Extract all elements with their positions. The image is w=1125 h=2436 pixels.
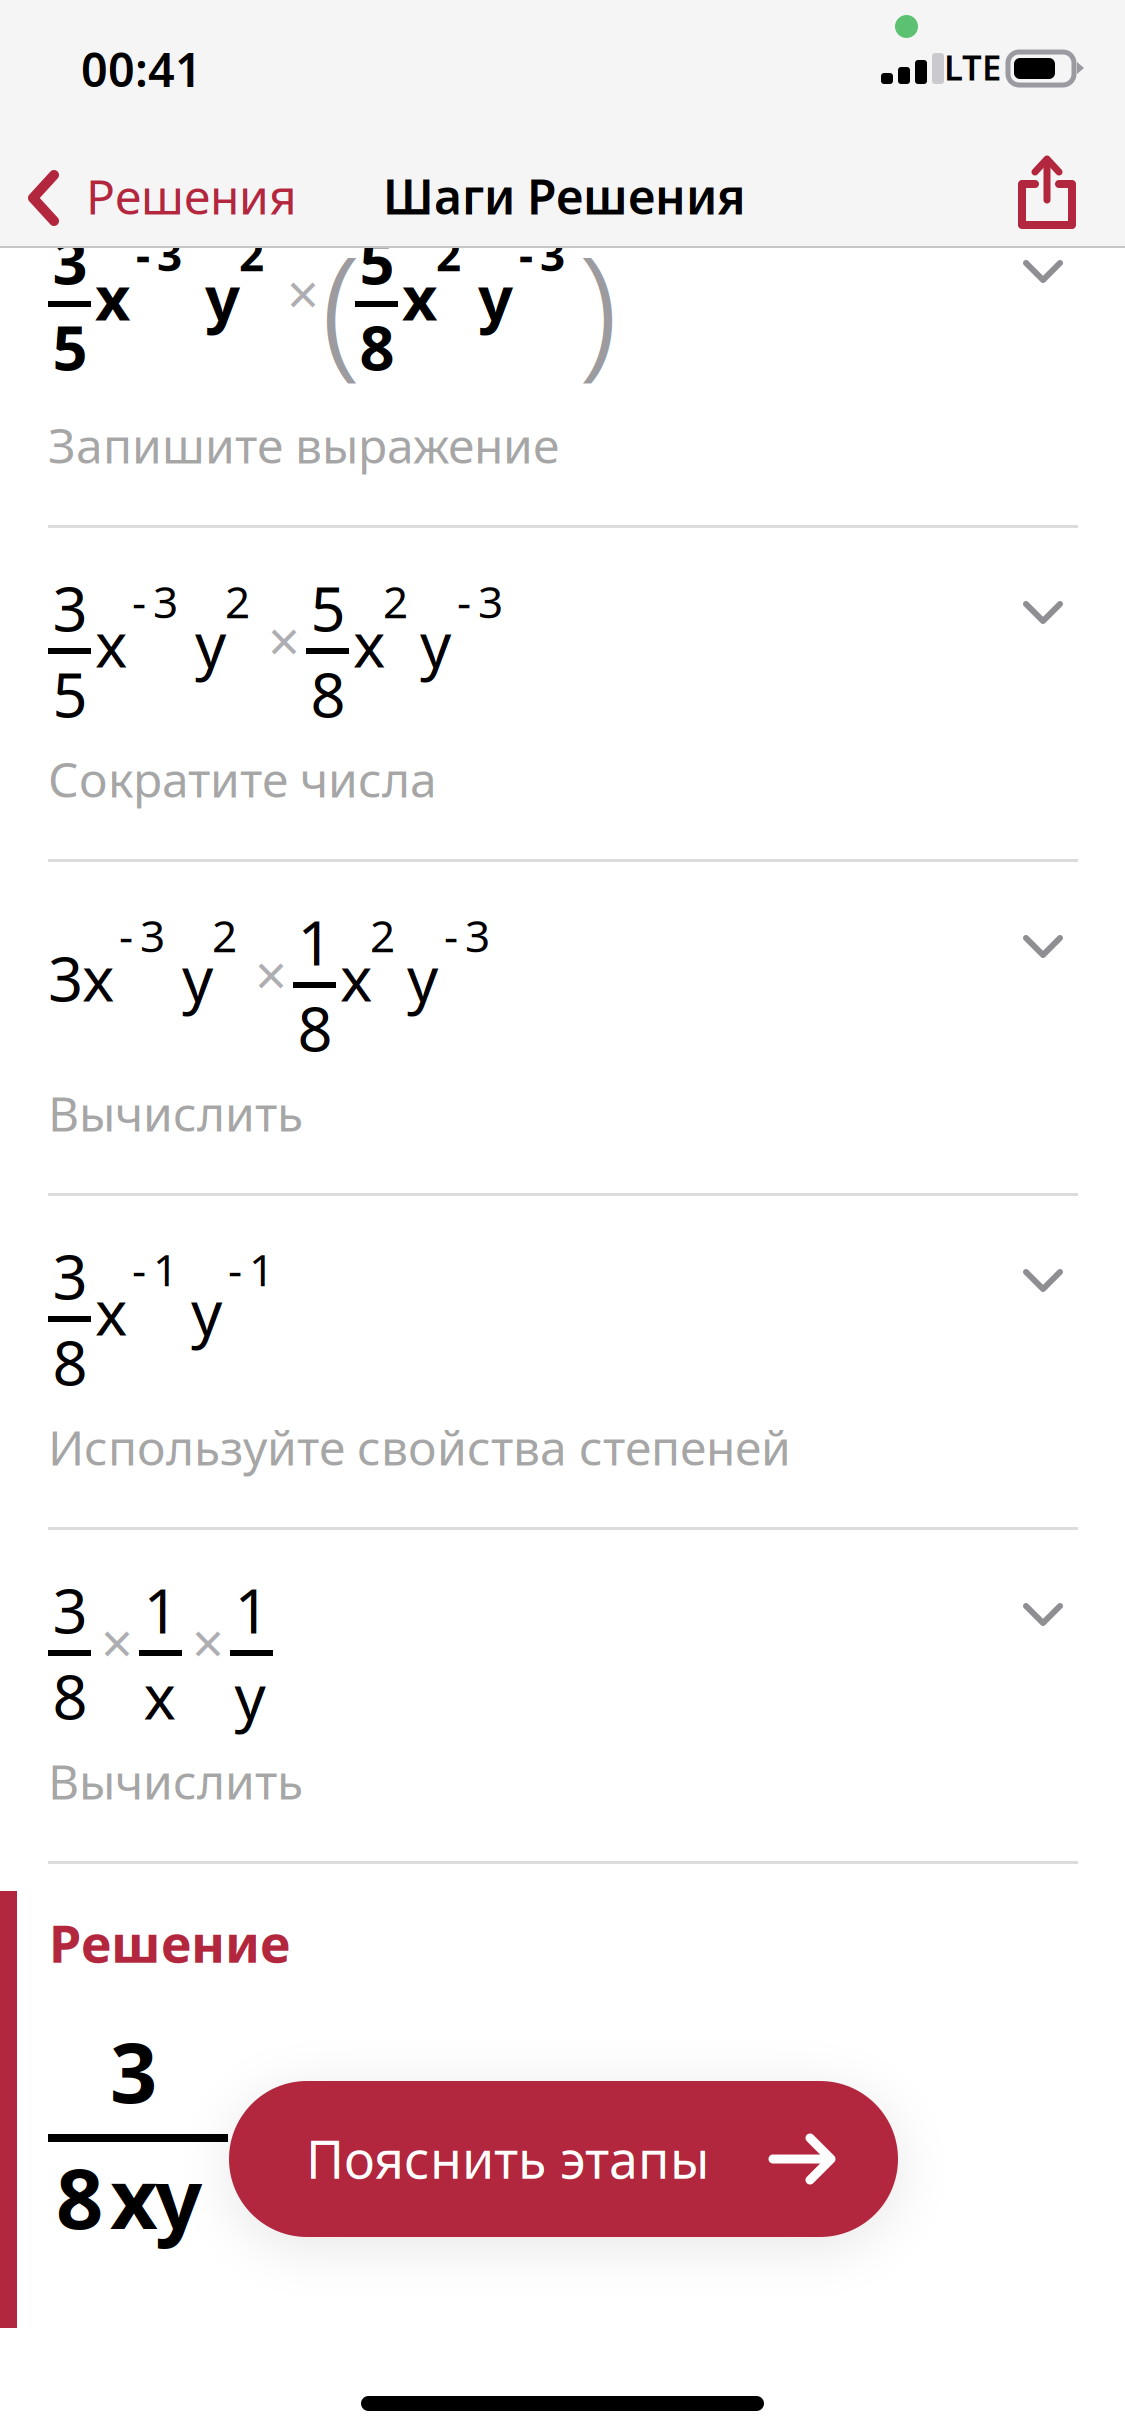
staticText: - 3: [437, 906, 490, 964]
staticText: 8: [297, 987, 332, 1068]
staticText: 2: [436, 225, 461, 283]
staticText: ): [578, 209, 618, 400]
staticText: y: [182, 937, 213, 1018]
staticText: ×: [192, 1605, 224, 1679]
staticText: x: [402, 256, 437, 337]
staticText: 2: [239, 225, 264, 283]
staticText: - 1: [125, 1240, 178, 1298]
staticText: y: [155, 2142, 202, 2252]
staticText: - 3: [129, 225, 182, 283]
staticText: 8: [56, 2142, 103, 2252]
staticText: y: [407, 937, 438, 1018]
staticText: x: [82, 937, 114, 1018]
staticText: 3: [52, 220, 87, 301]
staticText: 2: [383, 572, 408, 630]
staticText: y: [478, 256, 513, 337]
staticText: 3: [110, 2016, 157, 2126]
staticText: ×: [287, 256, 319, 330]
button[interactable]: Решения: [0, 132, 300, 248]
staticText: - 3: [512, 225, 565, 283]
staticText: 3: [52, 1235, 87, 1316]
staticText: Вычислить: [48, 1749, 303, 1813]
button[interactable]: Share: [1000, 132, 1120, 248]
staticText: x: [110, 2142, 158, 2252]
staticText: x: [143, 1655, 175, 1736]
staticText: 8: [359, 306, 394, 387]
staticText: 8: [52, 1655, 87, 1736]
staticText: 5: [359, 220, 394, 301]
staticText: x: [353, 603, 385, 684]
staticText: ×: [268, 603, 300, 677]
button[interactable]: Пояснить этапы: [229, 2081, 898, 2237]
staticText: 1: [234, 1569, 269, 1650]
staticText: 00:41: [81, 38, 202, 100]
staticText: Сократите числа: [48, 747, 437, 811]
staticText: - 3: [112, 906, 165, 964]
staticText: x: [340, 937, 372, 1018]
staticText: ×: [255, 937, 287, 1011]
staticText: x: [95, 1271, 127, 1352]
staticText: y: [191, 1271, 222, 1352]
staticText: 2: [212, 906, 237, 964]
staticText: - 3: [450, 572, 503, 630]
staticText: 2: [225, 572, 250, 630]
staticText: Решения: [86, 164, 297, 228]
button[interactable]: 3: [0, 1223, 1125, 1557]
staticText: Пояснить этапы: [306, 2124, 709, 2193]
button[interactable]: 3: [0, 1557, 1125, 1891]
staticText: y: [195, 603, 226, 684]
staticText: 3: [48, 937, 83, 1018]
button[interactable]: 3: [0, 273, 1125, 555]
staticText: y: [234, 1655, 265, 1736]
staticText: Решение: [49, 1908, 290, 1977]
button[interactable]: 3: [0, 555, 1125, 889]
staticText: 8: [52, 1321, 87, 1402]
staticText: Используйте свойства степеней: [48, 1415, 791, 1479]
staticText: y: [205, 256, 240, 337]
staticText: 3: [52, 567, 87, 648]
staticText: 5: [52, 653, 87, 734]
staticText: x: [95, 603, 127, 684]
staticText: LTE: [944, 44, 1001, 90]
staticText: - 1: [221, 1240, 274, 1298]
staticText: (: [321, 209, 361, 400]
button[interactable]: 3: [0, 889, 1125, 1223]
staticText: 5: [52, 306, 87, 387]
staticText: 1: [143, 1569, 178, 1650]
staticText: 5: [310, 567, 345, 648]
staticText: ×: [101, 1605, 133, 1679]
staticText: 1: [297, 901, 332, 982]
staticText: Вычислить: [48, 1081, 303, 1145]
staticText: 3: [52, 1569, 87, 1650]
staticText: x: [95, 256, 130, 337]
staticText: - 3: [125, 572, 178, 630]
staticText: 2: [370, 906, 395, 964]
staticText: Запишите выражение: [48, 413, 559, 477]
staticText: Шаги Решения: [383, 164, 746, 228]
staticText: 8: [310, 653, 345, 734]
staticText: y: [420, 603, 451, 684]
